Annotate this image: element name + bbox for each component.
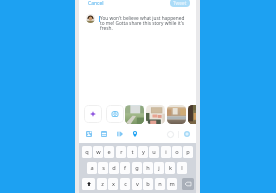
staticText: l — [181, 164, 183, 172]
button[interactable]: Camera — [106, 105, 124, 123]
button[interactable]: Backspace — [182, 178, 194, 190]
staticText: i — [165, 148, 167, 156]
button[interactable]: Photo — [146, 105, 165, 124]
button[interactable]: b — [143, 178, 153, 190]
button[interactable]: g — [132, 162, 142, 174]
staticText: Cancel — [88, 0, 104, 7]
button[interactable]: j — [154, 162, 164, 174]
staticText: m — [169, 180, 175, 188]
staticText: z — [101, 180, 104, 188]
button[interactable]: Add GIF — [99, 129, 109, 139]
staticText: q — [85, 148, 89, 156]
button[interactable]: z — [97, 178, 107, 190]
button[interactable]: l — [177, 162, 187, 174]
staticText: e — [107, 148, 111, 156]
staticText: o — [175, 148, 179, 156]
button[interactable]: q — [82, 146, 92, 158]
staticText: x — [112, 180, 115, 188]
button[interactable]: r — [116, 146, 126, 158]
button[interactable]: d — [109, 162, 119, 174]
staticText: w — [96, 148, 101, 156]
button[interactable]: Photo — [125, 105, 144, 124]
staticText: a — [90, 164, 94, 172]
button[interactable]: m — [167, 178, 177, 190]
button[interactable]: c — [120, 178, 130, 190]
staticText: y — [142, 148, 145, 156]
button[interactable]: Effects — [84, 105, 102, 123]
button[interactable]: t — [127, 146, 137, 158]
button[interactable]: v — [132, 178, 142, 190]
button[interactable]: s — [98, 162, 108, 174]
button[interactable]: y — [138, 146, 148, 158]
button[interactable]: n — [155, 178, 165, 190]
button[interactable]: Add photo — [84, 129, 94, 139]
button[interactable]: w — [93, 146, 103, 158]
button[interactable]: Cancel — [88, 0, 104, 7]
staticText: c — [124, 180, 127, 188]
button[interactable]: k — [165, 162, 175, 174]
button[interactable]: u — [149, 146, 159, 158]
staticText: h — [146, 164, 150, 172]
button[interactable]: f — [120, 162, 130, 174]
button[interactable]: Photo — [188, 105, 196, 124]
staticText: g — [135, 164, 139, 172]
staticText: s — [102, 164, 105, 172]
button[interactable]: i — [161, 146, 171, 158]
staticText: You won't believe what just happened to … — [100, 15, 186, 32]
staticText: b — [146, 180, 150, 188]
staticText: j — [158, 164, 160, 172]
staticText: t — [131, 148, 134, 156]
staticText: n — [158, 180, 162, 188]
button[interactable]: Add location — [130, 129, 140, 139]
button[interactable]: e — [104, 146, 114, 158]
button[interactable]: Add another tweet — [184, 131, 190, 137]
button[interactable]: p — [183, 146, 193, 158]
button[interactable]: x — [108, 178, 118, 190]
button[interactable]: a — [87, 162, 97, 174]
staticText: v — [136, 180, 139, 188]
button[interactable]: Tweet — [170, 0, 190, 7]
staticText: p — [186, 148, 190, 156]
button[interactable]: Shift — [82, 178, 95, 190]
staticText: f — [124, 164, 126, 172]
button[interactable]: Photo — [167, 105, 186, 124]
staticText: Tweet — [173, 0, 187, 6]
button[interactable]: h — [143, 162, 153, 174]
button[interactable]: o — [172, 146, 182, 158]
button[interactable]: Add poll — [115, 129, 125, 139]
staticText: r — [120, 148, 123, 156]
staticText: u — [152, 148, 156, 156]
staticText: d — [112, 164, 116, 172]
staticText: k — [169, 164, 172, 172]
